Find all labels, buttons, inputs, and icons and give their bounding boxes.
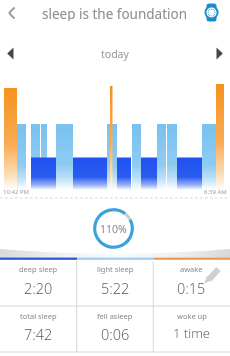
staticText: 2:20 xyxy=(24,278,53,296)
staticText: 0:06 xyxy=(101,324,130,342)
button[interactable] xyxy=(2,2,26,26)
button[interactable] xyxy=(90,206,140,256)
button[interactable] xyxy=(198,262,228,288)
staticText: sleep is the foundation xyxy=(42,5,188,21)
button[interactable]: 7:42 xyxy=(0,324,77,342)
staticText: deep sleep xyxy=(19,264,58,274)
button[interactable] xyxy=(204,42,230,66)
button[interactable]: 0:15 xyxy=(153,278,230,296)
staticText: light sleep xyxy=(97,264,134,274)
staticText: fell asleep xyxy=(97,311,133,321)
staticText: 10:42 PM xyxy=(3,188,29,196)
staticText: today xyxy=(101,47,129,61)
staticText: 1 time xyxy=(173,324,211,342)
staticText: total sleep xyxy=(20,311,57,321)
button[interactable] xyxy=(0,42,26,66)
button[interactable]: 1 time xyxy=(153,324,230,342)
staticText: 110% xyxy=(100,222,127,235)
button[interactable]: 5:22 xyxy=(77,278,153,296)
button[interactable]: 2:20 xyxy=(0,278,77,296)
staticText: awake xyxy=(180,264,203,274)
staticText: 5:22 xyxy=(101,278,130,296)
button[interactable] xyxy=(200,0,228,26)
staticText: 6:39 AM xyxy=(204,188,227,196)
staticText: woke up xyxy=(177,311,207,321)
staticText: 0:15 xyxy=(177,278,206,296)
staticText: 7:42 xyxy=(24,324,53,342)
button[interactable]: 0:06 xyxy=(77,324,153,342)
